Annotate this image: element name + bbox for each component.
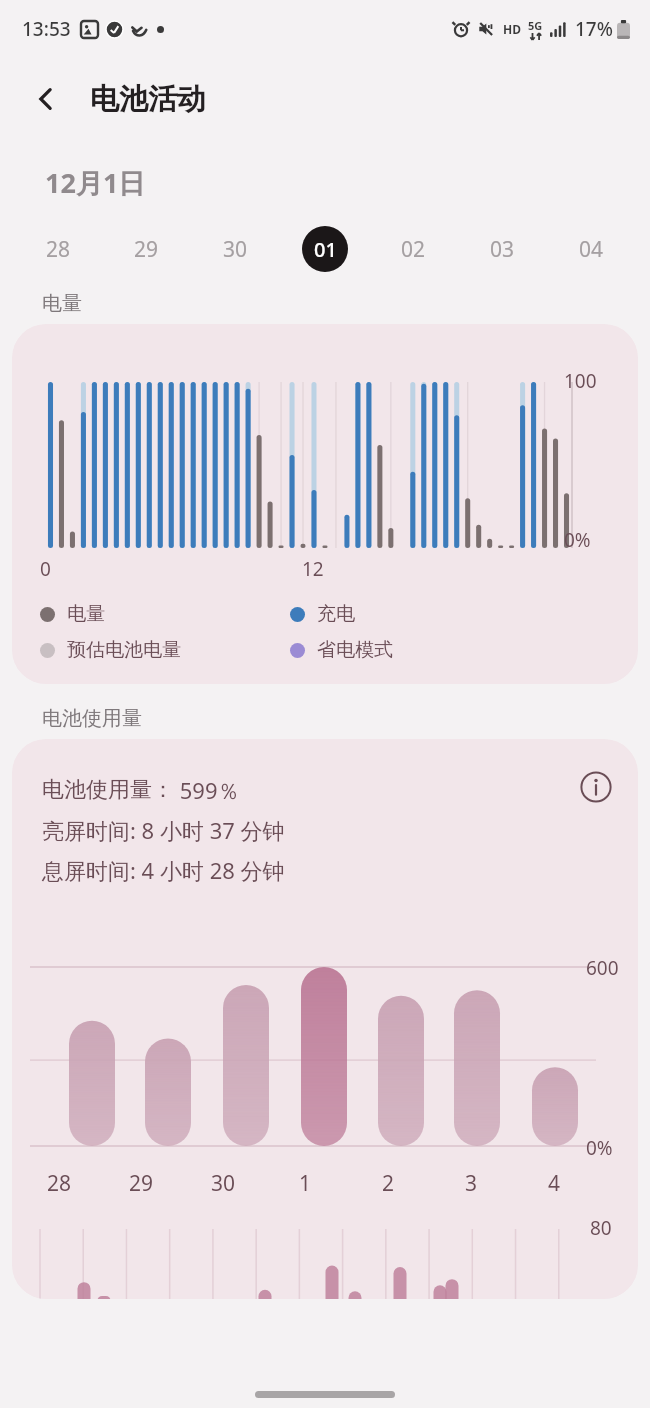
staticText: 29 [129,1169,154,1198]
staticText: 599％ [174,775,240,805]
staticText: 12月1日 [45,164,146,201]
staticText: 600 [586,955,619,981]
staticText: 02 [401,235,426,264]
staticText: 预估电池电量 [67,638,181,662]
staticText: 电池使用量 [42,706,142,731]
staticText: 省电模式 [317,638,393,662]
staticText: 电量 [42,291,82,316]
staticText: 0% [564,527,591,553]
staticText: 28 [47,1169,72,1198]
staticText: 04 [579,235,604,264]
staticText: 100 [564,368,597,394]
staticText: 电池使用量： [42,776,174,804]
staticText: 12 [302,556,324,582]
staticText: 01 [314,236,337,263]
staticText: 28 [46,235,71,264]
staticText: 30 [223,235,248,264]
staticText: 29 [134,235,159,264]
staticText: 2 [382,1169,395,1198]
button[interactable]: 03 [458,221,547,277]
staticText: 电池活动 [90,81,206,118]
button[interactable]: Back [20,73,72,125]
staticText: HD [503,21,521,37]
staticText: 0% [586,1135,613,1161]
staticText: 3 [465,1169,478,1198]
staticText: 电量 [67,602,105,626]
staticText: 亮屏时间: 8 小时 37 分钟 [42,815,285,845]
button[interactable]: Info [572,763,620,811]
staticText: 息屏时间: 4 小时 28 分钟 [42,855,285,885]
staticText: 30 [211,1169,236,1198]
button[interactable]: 28 [14,221,102,277]
staticText: 13:53 [22,16,71,42]
button[interactable]: 30 [191,221,280,277]
button[interactable]: 02 [369,221,458,277]
button[interactable]: 100 [12,324,638,684]
staticText: 5G [528,18,543,33]
button[interactable]: 29 [102,221,191,277]
button[interactable]: 01 [280,221,369,277]
staticText: 03 [490,235,515,264]
staticText: 0 [40,556,51,582]
button[interactable]: 04 [547,221,636,277]
staticText: 17% [575,16,613,42]
staticText: 4 [548,1169,561,1198]
staticText: 充电 [317,602,355,626]
staticText: 80 [590,1215,612,1241]
staticText: 1 [299,1169,312,1198]
